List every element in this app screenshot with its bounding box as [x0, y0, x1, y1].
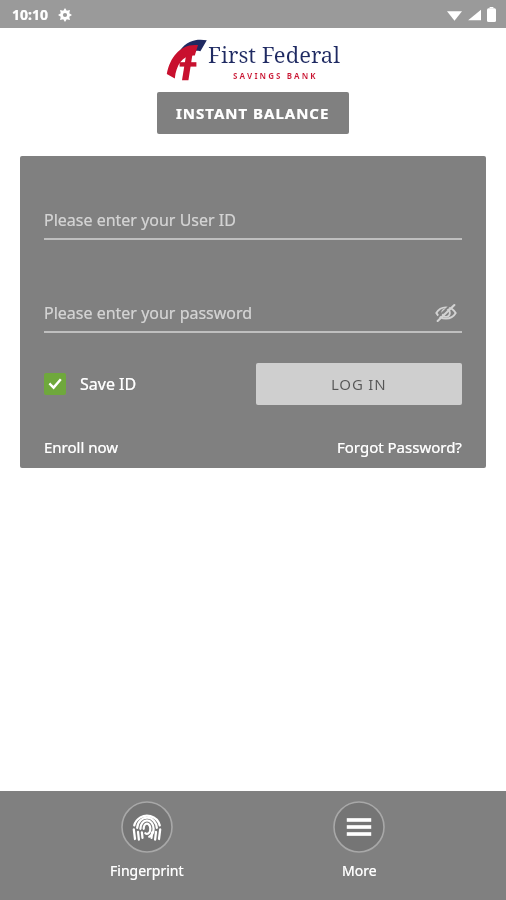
button[interactable]: Forgot Password? [337, 437, 462, 457]
staticText: LOG IN [331, 374, 387, 394]
staticText: 10:10 [12, 5, 48, 24]
button[interactable]: Show password [430, 297, 462, 329]
staticText: Enroll now [44, 437, 119, 457]
button[interactable]: More options [294, 801, 424, 880]
staticText: Fingerprint [110, 861, 184, 880]
button[interactable]: INSTANT BALANCE [157, 92, 349, 134]
button[interactable]: LOG IN [256, 363, 462, 405]
staticText: Save ID [80, 373, 137, 395]
button[interactable]: Fingerprint login [82, 801, 212, 880]
staticText: Please enter your password [44, 302, 253, 324]
staticText: Forgot Password? [337, 437, 462, 457]
button[interactable]: Enroll now [44, 437, 119, 457]
staticText: S A V I N G S B A N K [233, 70, 316, 81]
button[interactable]: Please enter your password [44, 295, 462, 331]
staticText: INSTANT BALANCE [176, 103, 330, 123]
staticText: More [342, 861, 377, 880]
button[interactable]: Save ID [44, 373, 137, 395]
staticText: Please enter your User ID [44, 209, 236, 231]
button[interactable]: Please enter your User ID [44, 202, 462, 238]
staticText: First Federal [208, 39, 341, 69]
